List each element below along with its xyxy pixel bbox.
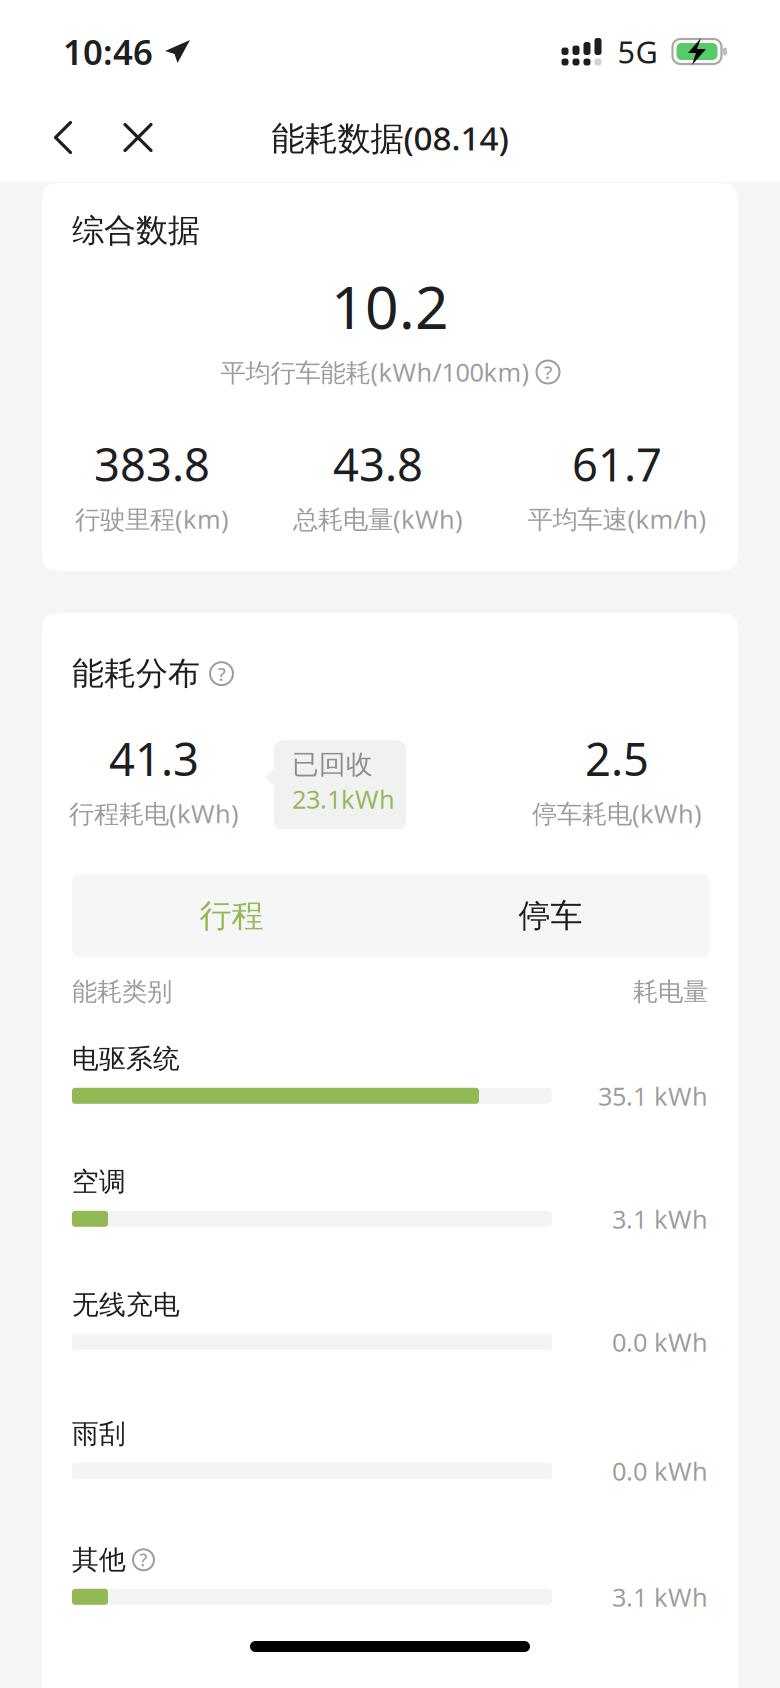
staticText: 能耗分布 [72,654,200,693]
staticText: 行驶里程(km) [75,502,229,536]
staticText: 总耗电量(kWh) [293,502,463,536]
staticText: 耗电量 [633,976,708,1007]
staticText: 10:46 [63,28,153,74]
staticText: 10.2 [331,267,449,345]
staticText: 0.0 kWh [612,1325,708,1359]
staticText: ? [544,360,552,384]
staticText: 61.7 [572,434,662,494]
staticText: 41.3 [109,728,199,788]
staticText: 能耗数据(08.14) [271,115,508,160]
staticText: 电驱系统 [72,1042,180,1075]
staticText: 383.8 [94,434,210,494]
staticText: 已回收 [292,748,373,781]
staticText: 综合数据 [72,211,200,250]
staticText: ? [217,661,225,686]
button[interactable]: 停车 [391,874,710,957]
staticText: 0.0 kWh [612,1454,708,1488]
staticText: 43.8 [333,434,423,494]
staticText: 5G [617,31,657,72]
staticText: 停车耗电(kWh) [532,796,702,830]
staticText: 平均车速(km/h) [527,502,706,536]
staticText: 无线充电 [72,1288,180,1321]
staticText: 行程耗电(kWh) [69,796,239,830]
staticText: 能耗类别 [72,976,172,1007]
button[interactable]: 行程 [72,874,391,957]
staticText: 23.1kWh [292,782,395,816]
staticText: 雨刮 [72,1417,126,1450]
staticText: 其他 [72,1543,126,1576]
staticText: 35.1 kWh [598,1079,708,1113]
button[interactable]: 返回 [25,92,101,183]
staticText: ? [139,1548,147,1571]
staticText: 2.5 [585,728,649,788]
staticText: 3.1 kWh [612,1202,708,1236]
staticText: 停车 [518,896,582,935]
staticText: 空调 [72,1165,126,1198]
staticText: 平均行车能耗(kWh/100km) [220,355,529,389]
button[interactable]: 关闭 [101,92,175,183]
staticText: 3.1 kWh [612,1580,708,1614]
staticText: 行程 [199,896,263,935]
